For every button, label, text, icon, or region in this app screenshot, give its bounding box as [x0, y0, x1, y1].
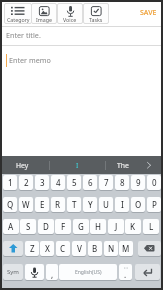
staticText: 6	[88, 177, 93, 188]
button[interactable]: T	[67, 197, 81, 212]
button[interactable]: 8	[115, 175, 129, 190]
button[interactable]: 7	[99, 175, 113, 190]
button[interactable]: Z	[25, 241, 39, 256]
staticText: B	[92, 243, 98, 254]
button[interactable]: H	[90, 219, 106, 234]
staticText: F	[61, 221, 66, 232]
staticText: D	[43, 221, 49, 232]
button[interactable]: B	[88, 241, 102, 256]
button[interactable]: F	[55, 219, 71, 234]
staticText: J	[115, 221, 118, 232]
staticText: Z	[30, 243, 35, 254]
button[interactable]: V	[72, 241, 86, 256]
staticText: 5	[72, 177, 77, 188]
button[interactable]: 4	[51, 175, 65, 190]
button[interactable]: 9	[131, 175, 145, 190]
button[interactable]: P	[147, 197, 161, 212]
staticText: R	[55, 199, 61, 210]
button[interactable]: 3	[35, 175, 49, 190]
button[interactable]: Sym	[3, 264, 23, 280]
button[interactable]: G	[73, 219, 89, 234]
button[interactable]: 5	[67, 175, 81, 190]
button[interactable]	[25, 264, 44, 280]
button[interactable]: English(US)	[59, 264, 117, 280]
staticText: N	[108, 243, 115, 254]
staticText: Enter memo	[9, 55, 51, 65]
staticText: Enter title.	[6, 30, 41, 40]
staticText: A	[8, 221, 14, 232]
button[interactable]: The	[106, 156, 140, 174]
staticText: 9	[136, 177, 141, 188]
staticText: X	[45, 243, 50, 254]
button[interactable]	[135, 264, 160, 280]
staticText: G	[78, 221, 84, 232]
button[interactable]: C	[56, 241, 70, 256]
button[interactable]: O	[131, 197, 145, 212]
staticText: E	[40, 199, 45, 210]
button[interactable]: R	[51, 197, 65, 212]
staticText: 7	[104, 177, 109, 188]
button[interactable]: Y	[83, 197, 97, 212]
button[interactable]: S	[20, 219, 36, 234]
staticText: Category	[7, 16, 30, 23]
staticText: V	[77, 243, 82, 254]
button[interactable]: X	[40, 241, 54, 256]
staticText: 3	[40, 177, 45, 188]
staticText: Tasks	[89, 16, 103, 23]
staticText: W	[22, 199, 30, 210]
staticText: P	[152, 199, 157, 210]
button[interactable]: .	[119, 264, 132, 280]
button[interactable]: Voice	[57, 3, 83, 24]
staticText: 1	[8, 177, 13, 188]
staticText: Sym	[7, 268, 19, 276]
staticText: 8	[120, 177, 125, 188]
button[interactable]: E	[35, 197, 49, 212]
button[interactable]: D	[38, 219, 54, 234]
staticText: The	[117, 161, 129, 170]
staticText: K	[130, 221, 136, 232]
staticText: ,	[51, 269, 54, 280]
button[interactable]: W	[19, 197, 33, 212]
button[interactable]: ,	[46, 264, 58, 280]
button[interactable]: J	[108, 219, 124, 234]
button[interactable]: Tasks	[83, 3, 109, 24]
button[interactable]: Category	[4, 3, 32, 24]
button[interactable]	[3, 241, 23, 256]
button[interactable]: 2	[19, 175, 33, 190]
button[interactable]: 6	[83, 175, 97, 190]
button[interactable]: K	[125, 219, 141, 234]
button[interactable]: Hey	[4, 156, 40, 174]
button[interactable]: 0	[147, 175, 161, 190]
staticText: .	[124, 269, 127, 280]
button[interactable]: M	[119, 241, 133, 256]
button[interactable]: N	[104, 241, 118, 256]
button[interactable]: Q	[3, 197, 17, 212]
staticText: Image	[36, 16, 52, 23]
staticText: Voice	[63, 16, 77, 23]
staticText: 0	[152, 177, 157, 188]
button[interactable]: A	[3, 219, 19, 234]
staticText: H	[95, 221, 101, 232]
staticText: Y	[88, 199, 93, 210]
staticText: T	[72, 199, 77, 210]
button[interactable]: SAVE	[134, 4, 162, 22]
button[interactable]: U	[99, 197, 113, 212]
staticText: I	[76, 161, 79, 170]
button[interactable]: I	[115, 197, 129, 212]
staticText: O	[135, 199, 142, 210]
button[interactable]: L	[143, 219, 159, 234]
staticText: M	[122, 243, 130, 254]
staticText: Q	[7, 199, 14, 210]
staticText: S	[26, 221, 31, 232]
button[interactable]: 1	[3, 175, 17, 190]
staticText: C	[60, 243, 66, 254]
button[interactable]: Image	[31, 3, 57, 24]
staticText: L	[149, 221, 154, 232]
staticText: 2	[24, 177, 29, 188]
button[interactable]	[138, 241, 161, 256]
staticText: U	[103, 199, 109, 210]
staticText: 4	[56, 177, 61, 188]
staticText: SAVE	[140, 8, 157, 18]
staticText: Hey	[16, 161, 29, 170]
button[interactable]: I	[56, 156, 98, 174]
